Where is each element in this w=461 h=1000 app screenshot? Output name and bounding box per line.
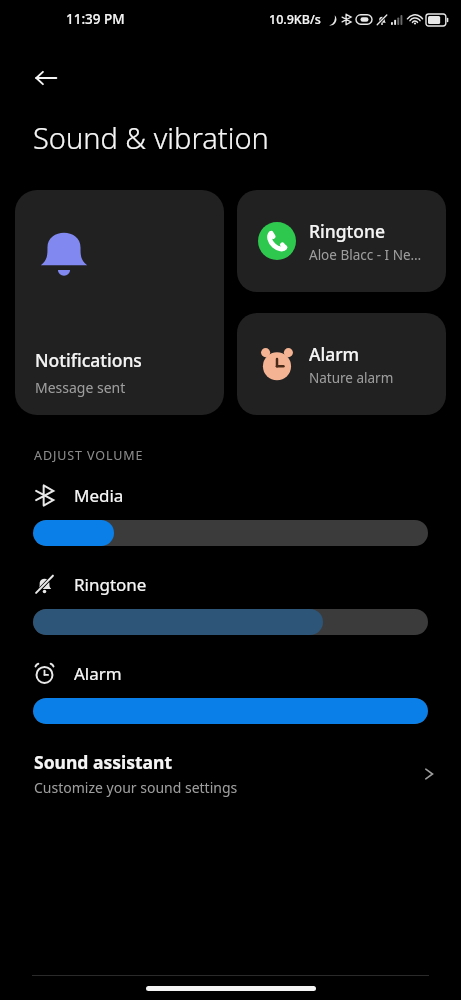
button[interactable]: Ringtone (0, 573, 461, 635)
staticText: ADJUST VOLUME (34, 447, 144, 464)
staticText: 10.9KB/s (269, 11, 321, 28)
staticText: Aloe Blacc - I Ne… (309, 246, 422, 264)
button[interactable]: Alarm (0, 662, 461, 724)
staticText: Media (74, 484, 124, 507)
button[interactable]: Back (22, 54, 70, 102)
staticText: Customize your sound settings (34, 778, 238, 797)
staticText: Ringtone (309, 219, 386, 243)
staticText: Alarm (309, 342, 360, 366)
button[interactable]: Alarm (237, 313, 446, 415)
staticText: Notifications (35, 348, 142, 372)
staticText: Alarm (74, 662, 122, 685)
staticText: Nature alarm (309, 369, 394, 387)
staticText: Ringtone (74, 573, 147, 596)
button[interactable]: Sound assistant (0, 750, 461, 797)
staticText: 11:39 PM (66, 10, 125, 28)
button[interactable]: Media (0, 484, 461, 546)
staticText: Message sent (35, 378, 126, 397)
staticText: Sound & vibration (33, 118, 269, 157)
button[interactable]: Ringtone (237, 190, 446, 292)
staticText: Sound assistant (34, 750, 173, 774)
button[interactable]: Notifications (15, 190, 224, 415)
